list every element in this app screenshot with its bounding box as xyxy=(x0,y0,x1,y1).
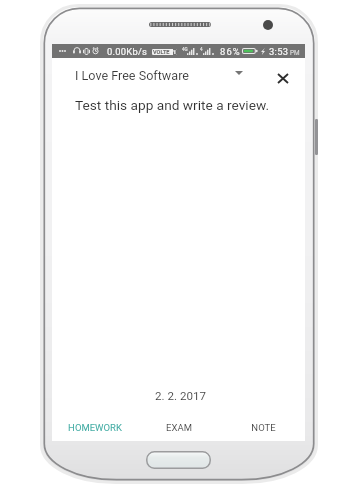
staticText: 86% xyxy=(220,46,241,57)
button[interactable]: EXAM xyxy=(137,413,221,441)
staticText: VOLTE xyxy=(153,49,170,55)
button[interactable]: Expand xyxy=(227,61,251,85)
staticText: PM xyxy=(290,49,300,57)
staticText: 3:53 xyxy=(269,46,289,57)
staticText: I Love Free Software xyxy=(75,68,189,83)
staticText: 4 xyxy=(200,47,203,52)
button[interactable]: NOTE xyxy=(221,413,305,441)
staticText: 2. 2. 2017 xyxy=(155,389,206,403)
staticText: HOMEWORK xyxy=(68,422,122,433)
staticText: 1 xyxy=(173,49,177,55)
button[interactable]: HOMEWORK xyxy=(52,413,137,441)
staticText: Test this app and write a review. xyxy=(75,97,270,113)
staticText: 0.00Kb/s xyxy=(107,46,148,57)
staticText: 4G xyxy=(182,47,188,52)
staticText: NOTE xyxy=(251,422,276,433)
staticText: EXAM xyxy=(166,422,192,433)
button[interactable]: Close xyxy=(271,66,295,90)
